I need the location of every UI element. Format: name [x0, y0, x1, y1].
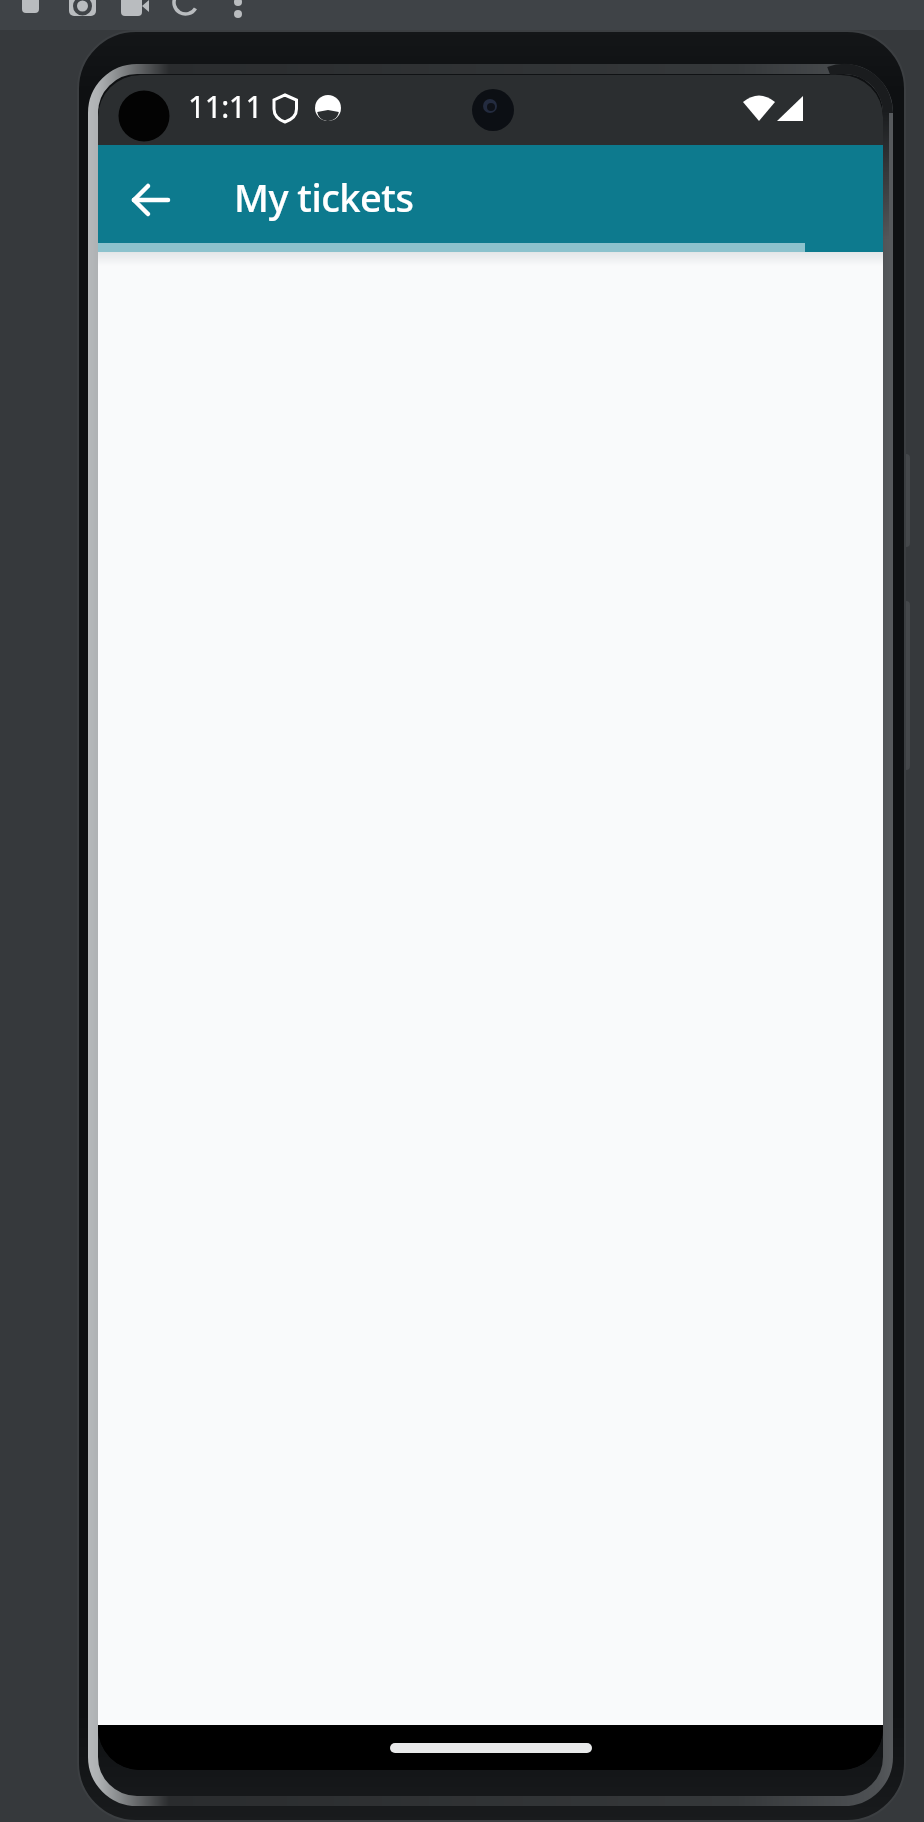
staticText: 11:11 — [188, 86, 263, 127]
staticText: My tickets — [234, 171, 414, 223]
button[interactable] — [165, 0, 205, 28]
button[interactable] — [61, 0, 103, 28]
button[interactable] — [390, 1743, 592, 1753]
button[interactable] — [124, 173, 178, 227]
button[interactable] — [14, 0, 46, 28]
button[interactable] — [226, 0, 250, 28]
button[interactable] — [113, 0, 155, 28]
